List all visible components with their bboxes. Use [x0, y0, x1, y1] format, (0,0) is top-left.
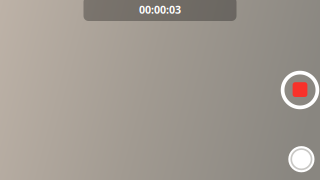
button[interactable]: Stop recording — [281, 71, 319, 109]
staticText: 00:00:03 — [139, 3, 181, 17]
button[interactable]: Take photo — [288, 146, 314, 172]
